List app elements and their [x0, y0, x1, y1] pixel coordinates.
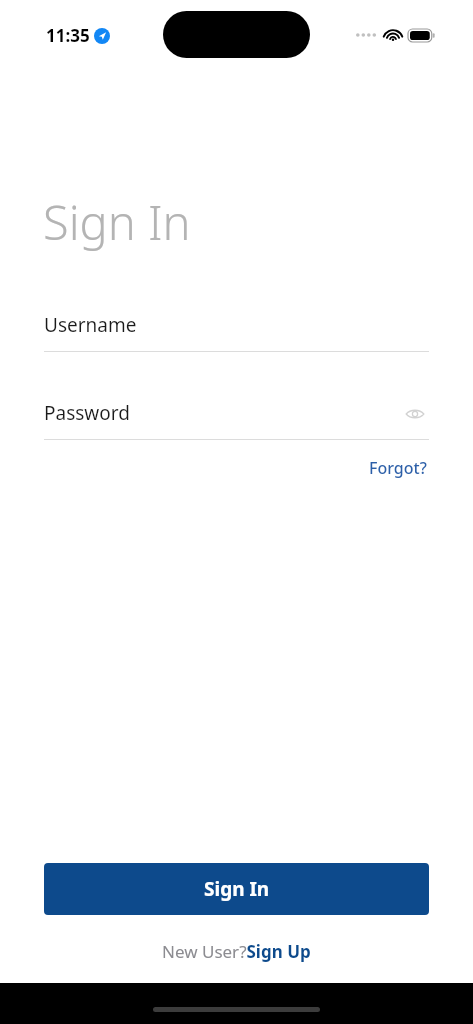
button[interactable]: Password [44, 400, 429, 428]
button[interactable]: Show password [401, 400, 429, 428]
staticText: Username [44, 312, 137, 338]
staticText: Forgot? [369, 457, 427, 479]
button[interactable]: Forgot? [366, 452, 430, 484]
staticText: Password [44, 400, 130, 426]
button[interactable]: New User?Sign Up [158, 936, 315, 967]
staticText: 11:35 [46, 24, 90, 47]
button[interactable]: Username [44, 312, 429, 340]
staticText: Sign In [204, 876, 270, 902]
staticText: New User?Sign Up [162, 940, 311, 963]
button[interactable]: Sign In [44, 863, 429, 915]
staticText: Sign In [43, 190, 191, 254]
